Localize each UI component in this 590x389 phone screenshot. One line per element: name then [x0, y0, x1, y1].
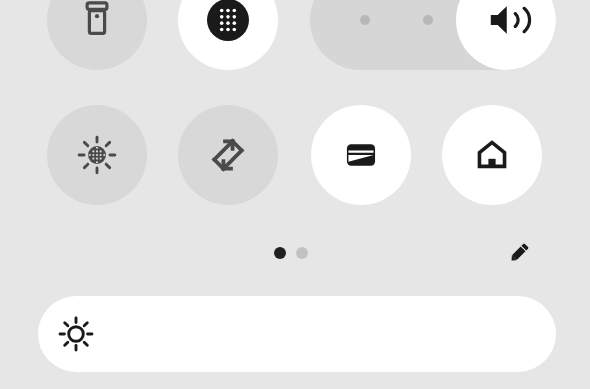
button[interactable]: Mobile data: [178, 105, 278, 205]
button[interactable]: Flashlight: [47, 0, 147, 70]
button[interactable]: Edit tiles: [497, 231, 541, 275]
button[interactable]: Home: [442, 105, 542, 205]
button[interactable]: Brightness: [38, 296, 556, 372]
button[interactable]: Dialpad: [178, 0, 278, 70]
button[interactable]: Wallet: [311, 105, 411, 205]
button[interactable]: Auto brightness: [47, 105, 147, 205]
button[interactable]: Volume: [310, 0, 556, 70]
